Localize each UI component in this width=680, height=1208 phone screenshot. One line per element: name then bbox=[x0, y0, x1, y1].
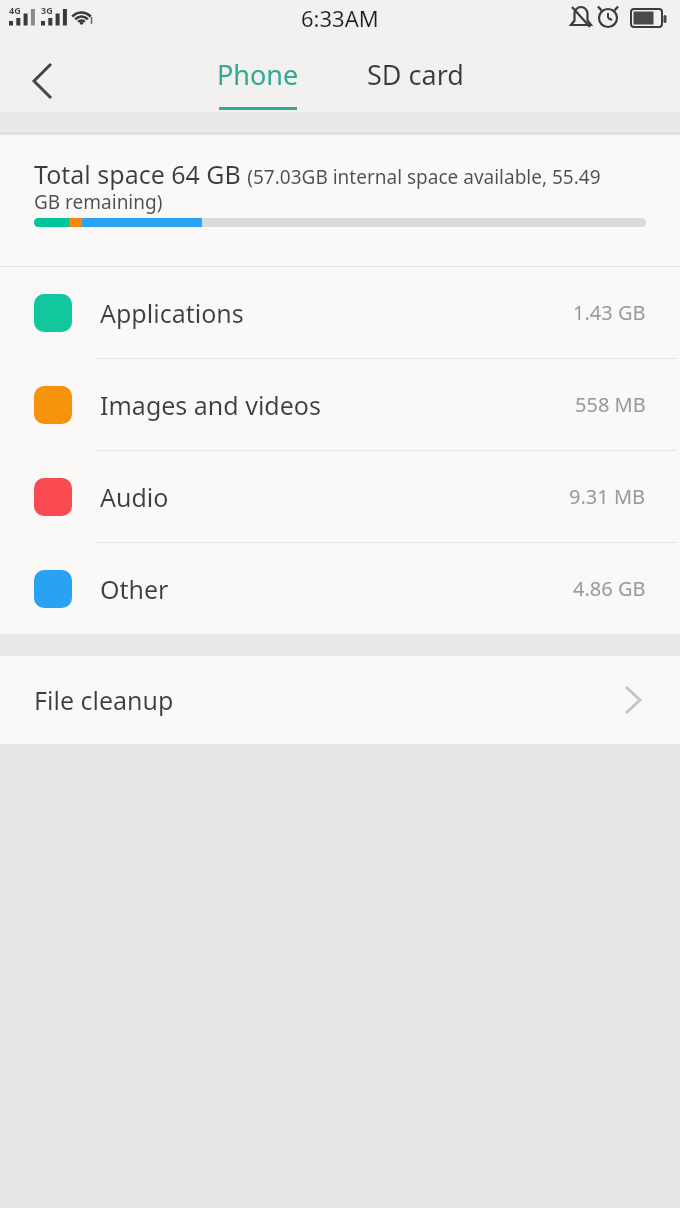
staticText: 6:33AM bbox=[301, 3, 379, 33]
button[interactable]: File cleanup bbox=[0, 656, 680, 744]
staticText: 4G bbox=[9, 4, 21, 16]
button[interactable]: SD card bbox=[367, 36, 464, 112]
button[interactable]: Images and videos bbox=[0, 359, 680, 450]
button[interactable]: Audio bbox=[0, 451, 680, 542]
staticText: Phone bbox=[217, 56, 299, 93]
staticText: Images and videos bbox=[100, 388, 321, 422]
staticText: 9.31 MB bbox=[569, 483, 646, 510]
button[interactable]: Other bbox=[0, 543, 680, 634]
staticText: 558 MB bbox=[575, 391, 646, 418]
staticText: Other bbox=[100, 572, 169, 606]
staticText: 1.43 GB bbox=[573, 299, 646, 326]
staticText: Total space 64 GB (57.03GB internal spac… bbox=[34, 157, 601, 215]
staticText: File cleanup bbox=[34, 683, 174, 717]
staticText: 4.86 GB bbox=[573, 575, 646, 602]
button[interactable]: Applications bbox=[0, 267, 680, 358]
staticText: SD card bbox=[367, 56, 464, 93]
staticText: Applications bbox=[100, 296, 244, 330]
staticText: 3G bbox=[41, 4, 53, 16]
button[interactable] bbox=[20, 52, 64, 96]
button[interactable]: Phone bbox=[217, 36, 299, 112]
staticText: Audio bbox=[100, 480, 169, 514]
